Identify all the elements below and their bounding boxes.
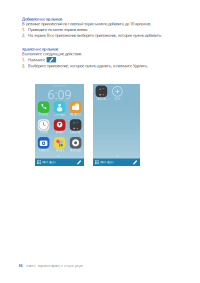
staticText: Settings <box>70 148 81 152</box>
staticText: Глава 5 Изучение экрана, и опции услуги <box>26 264 83 268</box>
staticText: Calculator <box>70 130 81 134</box>
staticText: ÷ <box>76 125 78 131</box>
staticText: 1. Нажмите <box>22 57 45 62</box>
staticText: − <box>102 86 104 91</box>
button[interactable]: + <box>70 119 81 134</box>
staticText: Camera <box>39 148 48 152</box>
button[interactable]: Settings <box>70 137 81 151</box>
button[interactable]: Contacts <box>54 101 65 116</box>
staticText: 86 <box>19 264 23 268</box>
button[interactable]: Phone <box>38 101 49 116</box>
staticText: Выполните следующие действия. <box>22 51 82 56</box>
button[interactable]: Clock <box>38 119 49 134</box>
staticText: Mon-apps <box>42 160 55 164</box>
staticText: Calculator <box>96 97 107 100</box>
staticText: Search <box>56 130 64 134</box>
staticText: Contacts <box>54 113 65 116</box>
staticText: Weather <box>70 113 81 116</box>
staticText: 2. На экране Все приложения выберите при… <box>22 32 162 38</box>
button[interactable]: + <box>96 86 107 100</box>
staticText: Phone <box>39 113 49 116</box>
staticText: Tulips <box>56 148 64 152</box>
staticText: Add <box>114 97 120 100</box>
staticText: 2. Выберите приложение, которое нужно уд… <box>22 63 148 68</box>
staticText: Добавление ярлыков <box>22 16 62 21</box>
staticText: ÷ <box>102 92 104 97</box>
staticText: Удаление ярлыков <box>22 46 58 52</box>
button[interactable]: Camera <box>38 137 49 151</box>
staticText: Clock <box>40 130 47 134</box>
staticText: × <box>73 125 75 131</box>
staticText: 6:09 <box>47 87 71 103</box>
staticText: Mon-apps <box>100 160 113 164</box>
button[interactable]: Add shortcut <box>112 86 123 100</box>
staticText: − <box>76 119 78 124</box>
button[interactable]: Tulips <box>54 137 65 151</box>
button[interactable]: Weather <box>70 101 81 116</box>
staticText: В режиме приложений на главный экран мож… <box>22 21 151 26</box>
staticText: + <box>73 119 75 124</box>
staticText: + <box>99 86 101 91</box>
staticText: 1. Проведите по меню экрана влево. <box>22 27 88 32</box>
button[interactable]: Search <box>54 119 65 134</box>
staticText: × <box>99 92 101 97</box>
